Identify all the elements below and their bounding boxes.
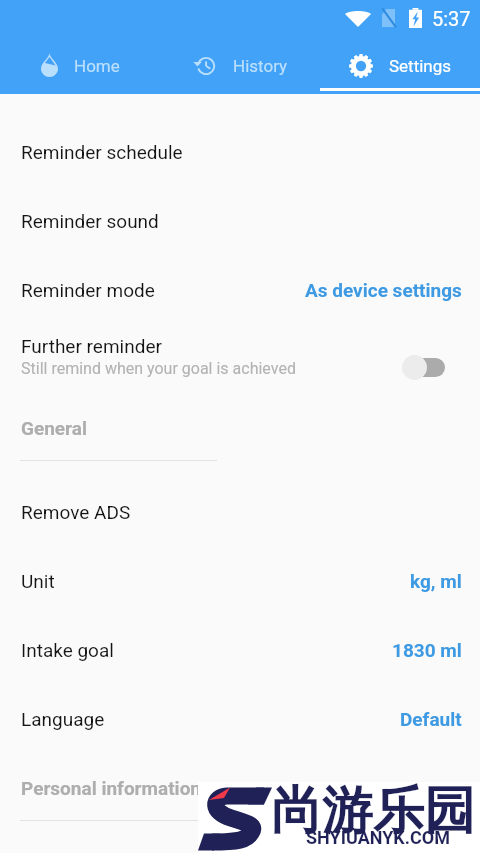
staticText: Default — [400, 708, 462, 730]
staticText: Further reminder — [21, 335, 162, 357]
staticText: 尚游乐园 — [271, 779, 475, 843]
button[interactable]: Home tab — [0, 40, 160, 91]
staticText: Reminder sound — [21, 210, 159, 232]
staticText: General — [21, 417, 87, 439]
button[interactable]: Reminder mode — [0, 255, 480, 324]
staticText: Personal information — [21, 777, 202, 799]
button[interactable]: Settings tab — [320, 40, 480, 91]
staticText: Intake goal — [21, 639, 114, 661]
staticText: Home — [74, 56, 120, 76]
staticText: Reminder schedule — [21, 141, 183, 163]
button[interactable]: Language — [0, 684, 480, 753]
staticText: 5:37 — [432, 7, 471, 30]
staticText: 1830 ml — [392, 639, 462, 661]
staticText: kg, ml — [410, 570, 462, 592]
button[interactable]: Reminder schedule — [0, 117, 480, 186]
button[interactable]: Reminder sound — [0, 186, 480, 255]
staticText: As device settings — [305, 279, 462, 301]
staticText: Still remind when your goal is achieved — [21, 359, 296, 378]
staticText: Reminder mode — [21, 279, 155, 301]
staticText: SHYIUANYK.COM — [306, 827, 450, 848]
button[interactable]: Further reminder — [0, 324, 480, 393]
staticText: Unit — [21, 570, 55, 592]
button[interactable]: Intake goal — [0, 615, 480, 684]
button[interactable]: History tab — [160, 40, 320, 91]
staticText: Settings — [389, 56, 452, 76]
staticText: Remove ADS — [21, 501, 131, 523]
button[interactable]: Unit — [0, 546, 480, 615]
staticText: History — [233, 56, 288, 76]
button[interactable]: Remove ADS — [0, 477, 480, 546]
staticText: Language — [21, 708, 105, 730]
button[interactable]: Further reminder switch, off — [402, 354, 445, 381]
